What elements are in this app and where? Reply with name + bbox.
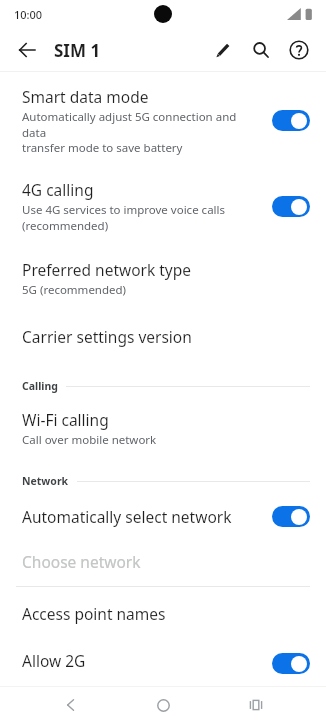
staticText: Use 4G services to improve voice calls (…: [22, 202, 226, 233]
staticText: SIM 1: [54, 39, 101, 62]
staticText: Allow 2G: [22, 650, 86, 671]
button[interactable]: Access point names: [0, 587, 326, 640]
button[interactable]: Help: [282, 33, 316, 67]
button[interactable]: Wi-Fi calling: [0, 399, 326, 458]
staticText: Carrier settings version: [22, 326, 192, 347]
button[interactable]: Home: [141, 686, 185, 724]
staticText: 4G calling: [22, 179, 94, 200]
button[interactable]: Automatically select network: [0, 494, 326, 539]
staticText: Automatically select network: [22, 506, 232, 527]
button[interactable]: Recent apps: [234, 686, 278, 724]
staticText: 10:00: [14, 7, 43, 22]
staticText: Smart data mode: [22, 86, 149, 107]
button[interactable]: Preferred network type: [0, 245, 326, 310]
staticText: Wi-Fi calling: [22, 409, 109, 430]
button[interactable]: Back: [10, 33, 44, 67]
staticText: Network: [22, 474, 69, 488]
staticText: Access point names: [22, 603, 166, 624]
button[interactable]: Back: [49, 686, 93, 724]
button[interactable]: 4G calling: [0, 167, 326, 245]
staticText: Choose network: [22, 551, 141, 572]
button[interactable]: Smart data mode: [0, 76, 326, 167]
button[interactable]: Allow 2G: [0, 640, 326, 686]
button[interactable]: Search: [244, 33, 278, 67]
staticText: 5G (recommended): [22, 282, 127, 298]
staticText: Calling: [22, 379, 58, 393]
button[interactable]: Choose network: [0, 539, 326, 586]
staticText: Automatically adjust 5G connection and d…: [22, 109, 262, 155]
staticText: Preferred network type: [22, 259, 192, 280]
staticText: Call over mobile network: [22, 432, 157, 448]
button[interactable]: Edit: [206, 33, 240, 67]
button[interactable]: Carrier settings version: [0, 310, 326, 363]
